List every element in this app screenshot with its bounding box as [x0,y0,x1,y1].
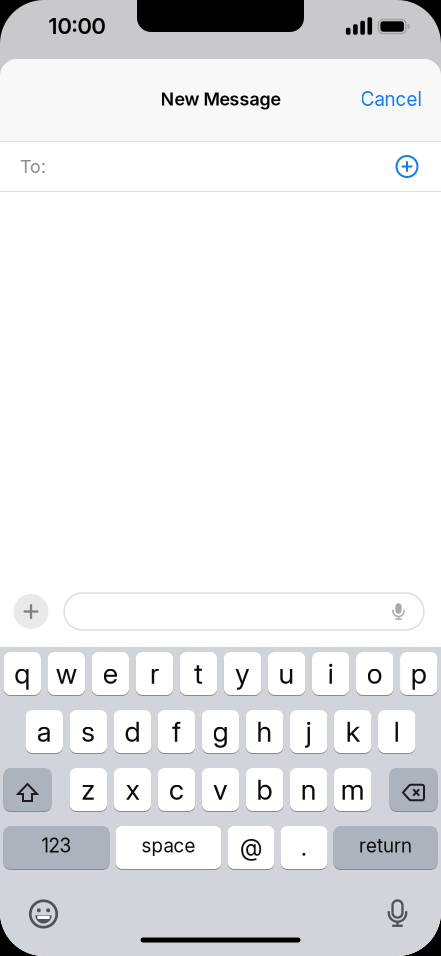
button[interactable]: Add Contact [392,151,422,181]
staticText: . [301,834,307,861]
button[interactable]: i [312,651,349,696]
button[interactable]: j [290,709,327,754]
staticText: j [306,715,312,748]
staticText: New Message [160,88,280,110]
button[interactable]: f [158,709,195,754]
button[interactable]: To [0,142,385,191]
staticText: v [213,773,228,806]
staticText: y [235,657,250,690]
button[interactable]: m [334,767,371,812]
staticText: space [141,834,195,857]
button[interactable]: n [290,767,327,812]
staticText: w [56,657,77,690]
staticText: c [169,773,184,806]
staticText: e [103,657,118,690]
staticText: b [257,773,273,806]
button[interactable]: p [400,651,437,696]
button[interactable]: space [115,825,221,870]
button[interactable]: o [356,651,393,696]
button[interactable]: b [246,767,283,812]
button[interactable]: h [246,709,283,754]
button[interactable]: s [70,709,107,754]
button[interactable]: x [114,767,151,812]
button[interactable]: Delete [389,767,437,812]
staticText: m [341,773,365,806]
button[interactable]: d [114,709,151,754]
staticText: q [14,657,30,690]
button[interactable]: Cancel [360,88,421,110]
button[interactable]: Dictation [381,898,413,930]
staticText: i [328,657,334,690]
button[interactable]: z [70,767,107,812]
button[interactable]: 123 [3,825,109,870]
staticText: 10:00 [48,13,105,39]
staticText: r [150,657,159,690]
staticText: u [279,657,295,690]
staticText: a [37,715,52,748]
staticText: t [194,657,203,690]
staticText: o [367,657,383,690]
staticText: n [301,773,317,806]
staticText: g [212,715,228,748]
button[interactable]: Shift [3,767,51,812]
button[interactable]: k [334,709,371,754]
button[interactable]: w [48,651,85,696]
staticText: h [257,715,273,748]
staticText: return [359,834,412,857]
button[interactable]: l [378,709,415,754]
button[interactable]: Emoji [26,897,60,931]
staticText: @ [240,834,262,861]
staticText: x [125,773,139,806]
button[interactable]: q [3,651,41,696]
button[interactable]: return [333,825,437,870]
button[interactable]: e [92,651,129,696]
button[interactable]: y [224,651,261,696]
button[interactable]: u [268,651,305,696]
button[interactable]: a [25,709,63,754]
button[interactable]: @ [227,825,274,870]
staticText: To: [20,156,46,177]
button[interactable]: . [280,825,327,870]
staticText: k [346,715,360,748]
button[interactable]: t [180,651,217,696]
button[interactable]: Message input [64,593,424,630]
button[interactable]: v [202,767,239,812]
staticText: Cancel [360,88,421,110]
staticText: d [124,715,140,748]
button[interactable]: r [136,651,173,696]
staticText: 123 [41,834,71,857]
button[interactable]: c [158,767,195,812]
staticText: p [411,657,427,690]
button[interactable]: g [202,709,239,754]
staticText: z [81,773,95,806]
staticText: f [172,715,181,748]
staticText: s [81,715,95,748]
staticText: l [394,715,400,748]
button[interactable]: Apps [13,594,48,629]
